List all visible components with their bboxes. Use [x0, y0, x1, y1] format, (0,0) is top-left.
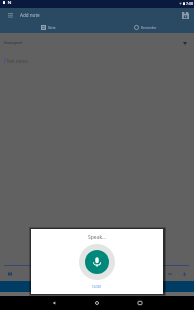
button[interactable]: Reminder — [97, 22, 194, 33]
button[interactable]: Unassigned — [0, 39, 194, 47]
staticText: Note — [48, 25, 56, 30]
staticText: Add note — [20, 12, 40, 18]
button[interactable]: Recent apps — [134, 297, 146, 309]
staticText: Reminder — [141, 25, 157, 30]
button[interactable]: CLOSE — [87, 284, 107, 290]
button[interactable]: Navigate up — [0, 8, 20, 22]
staticText: Text notes — [6, 58, 28, 64]
button[interactable]: Note — [0, 22, 97, 33]
staticText: 7:08 — [186, 1, 193, 6]
staticText: Speak… — [88, 234, 107, 241]
button[interactable]: Back — [48, 297, 60, 309]
button[interactable]: Save — [176, 8, 194, 22]
staticText: CLOSE — [92, 285, 102, 289]
button[interactable]: Speak — [79, 244, 115, 280]
button[interactable]: Home — [91, 297, 103, 309]
staticText: Unassigned — [4, 41, 22, 45]
